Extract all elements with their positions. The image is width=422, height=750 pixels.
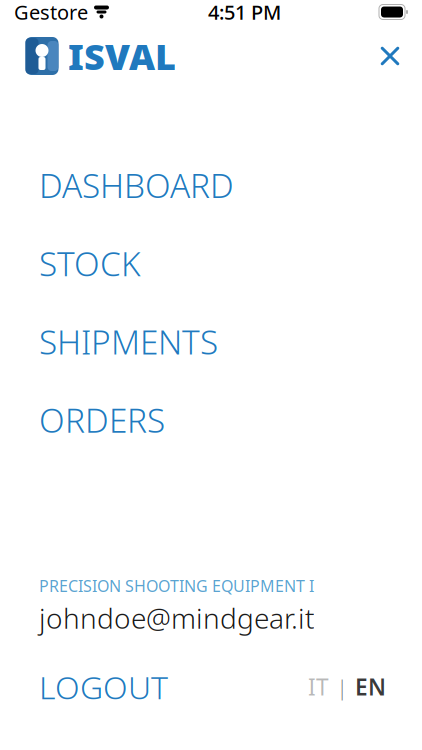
staticText: 4:51 PM — [208, 0, 281, 25]
staticText: PRECISION SHOOTING EQUIPMENT I — [39, 575, 314, 596]
staticText: IT — [308, 672, 329, 702]
staticText: STOCK — [39, 241, 141, 286]
button[interactable]: IT — [308, 666, 329, 708]
button[interactable]: STOCK — [0, 224, 422, 303]
staticText: LOGOUT — [39, 665, 168, 708]
button[interactable]: SHIPMENTS — [0, 302, 422, 381]
staticText: DASHBOARD — [39, 163, 234, 207]
staticText: johndoe@mindgear.it — [39, 599, 315, 636]
staticText: EN — [355, 672, 386, 702]
button[interactable]: EN — [355, 666, 386, 708]
button[interactable]: ORDERS — [0, 381, 422, 459]
button[interactable]: DASHBOARD — [0, 146, 422, 224]
staticText: ORDERS — [39, 398, 165, 442]
button[interactable]: Close — [368, 34, 412, 78]
button[interactable]: LOGOUT — [39, 659, 168, 714]
staticText: ISVAL — [68, 32, 176, 80]
staticText: SHIPMENTS — [39, 319, 218, 364]
staticText: Gestore — [14, 0, 88, 25]
staticText: | — [336, 672, 348, 702]
button[interactable]: ISVAL home — [24, 32, 176, 80]
